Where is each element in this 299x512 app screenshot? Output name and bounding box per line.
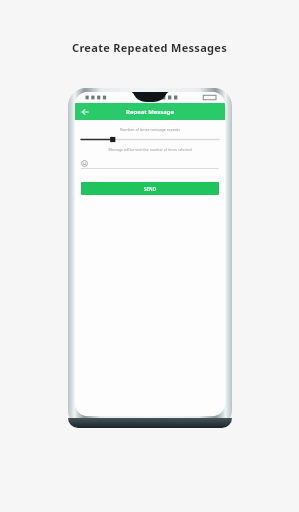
staticText: Message will be sent the number of times… [81,147,219,152]
button[interactable] [81,159,219,169]
button[interactable]: SEND [81,182,219,195]
staticText: Create Repeated Messages [72,40,227,55]
staticText: SEND [144,186,156,192]
staticText: Repeat Message [126,108,174,116]
button[interactable]: Back [78,105,92,119]
button[interactable]: Repeat count slider [81,135,219,144]
staticText: Number of times message repeats [81,127,219,132]
